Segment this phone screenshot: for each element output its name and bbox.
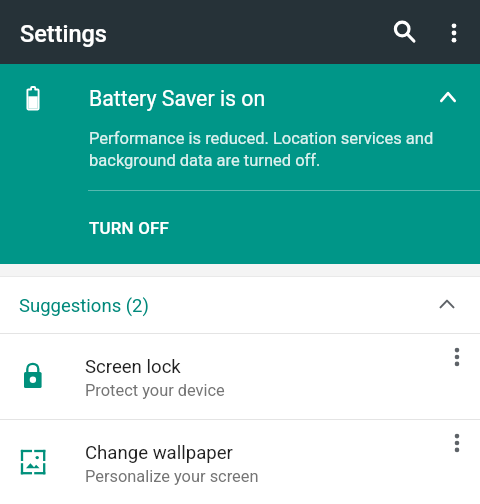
- button[interactable]: Collapse suggestions: [425, 282, 469, 326]
- button[interactable]: Search: [378, 6, 426, 54]
- staticText: Protect your device: [85, 381, 225, 400]
- button[interactable]: More options: [430, 9, 478, 57]
- button[interactable]: Screen lock: [0, 334, 480, 419]
- staticText: Change wallpaper: [85, 442, 233, 464]
- staticText: Personalize your screen: [85, 467, 259, 486]
- button[interactable]: Collapse: [426, 75, 470, 119]
- staticText: Battery Saver is on: [89, 86, 266, 111]
- button[interactable]: Change wallpaper: [0, 420, 480, 504]
- button[interactable]: More options: [435, 421, 479, 465]
- button[interactable]: TURN OFF: [0, 191, 480, 264]
- staticText: Performance is reduced. Location service…: [89, 129, 441, 170]
- button[interactable]: Suggestions (2): [0, 277, 480, 333]
- staticText: Screen lock: [85, 356, 181, 378]
- button[interactable]: More options: [435, 335, 479, 379]
- staticText: TURN OFF: [89, 218, 169, 238]
- staticText: Suggestions (2): [19, 295, 149, 317]
- button[interactable]: Battery Saver is on: [0, 64, 480, 128]
- staticText: Settings: [20, 20, 107, 48]
